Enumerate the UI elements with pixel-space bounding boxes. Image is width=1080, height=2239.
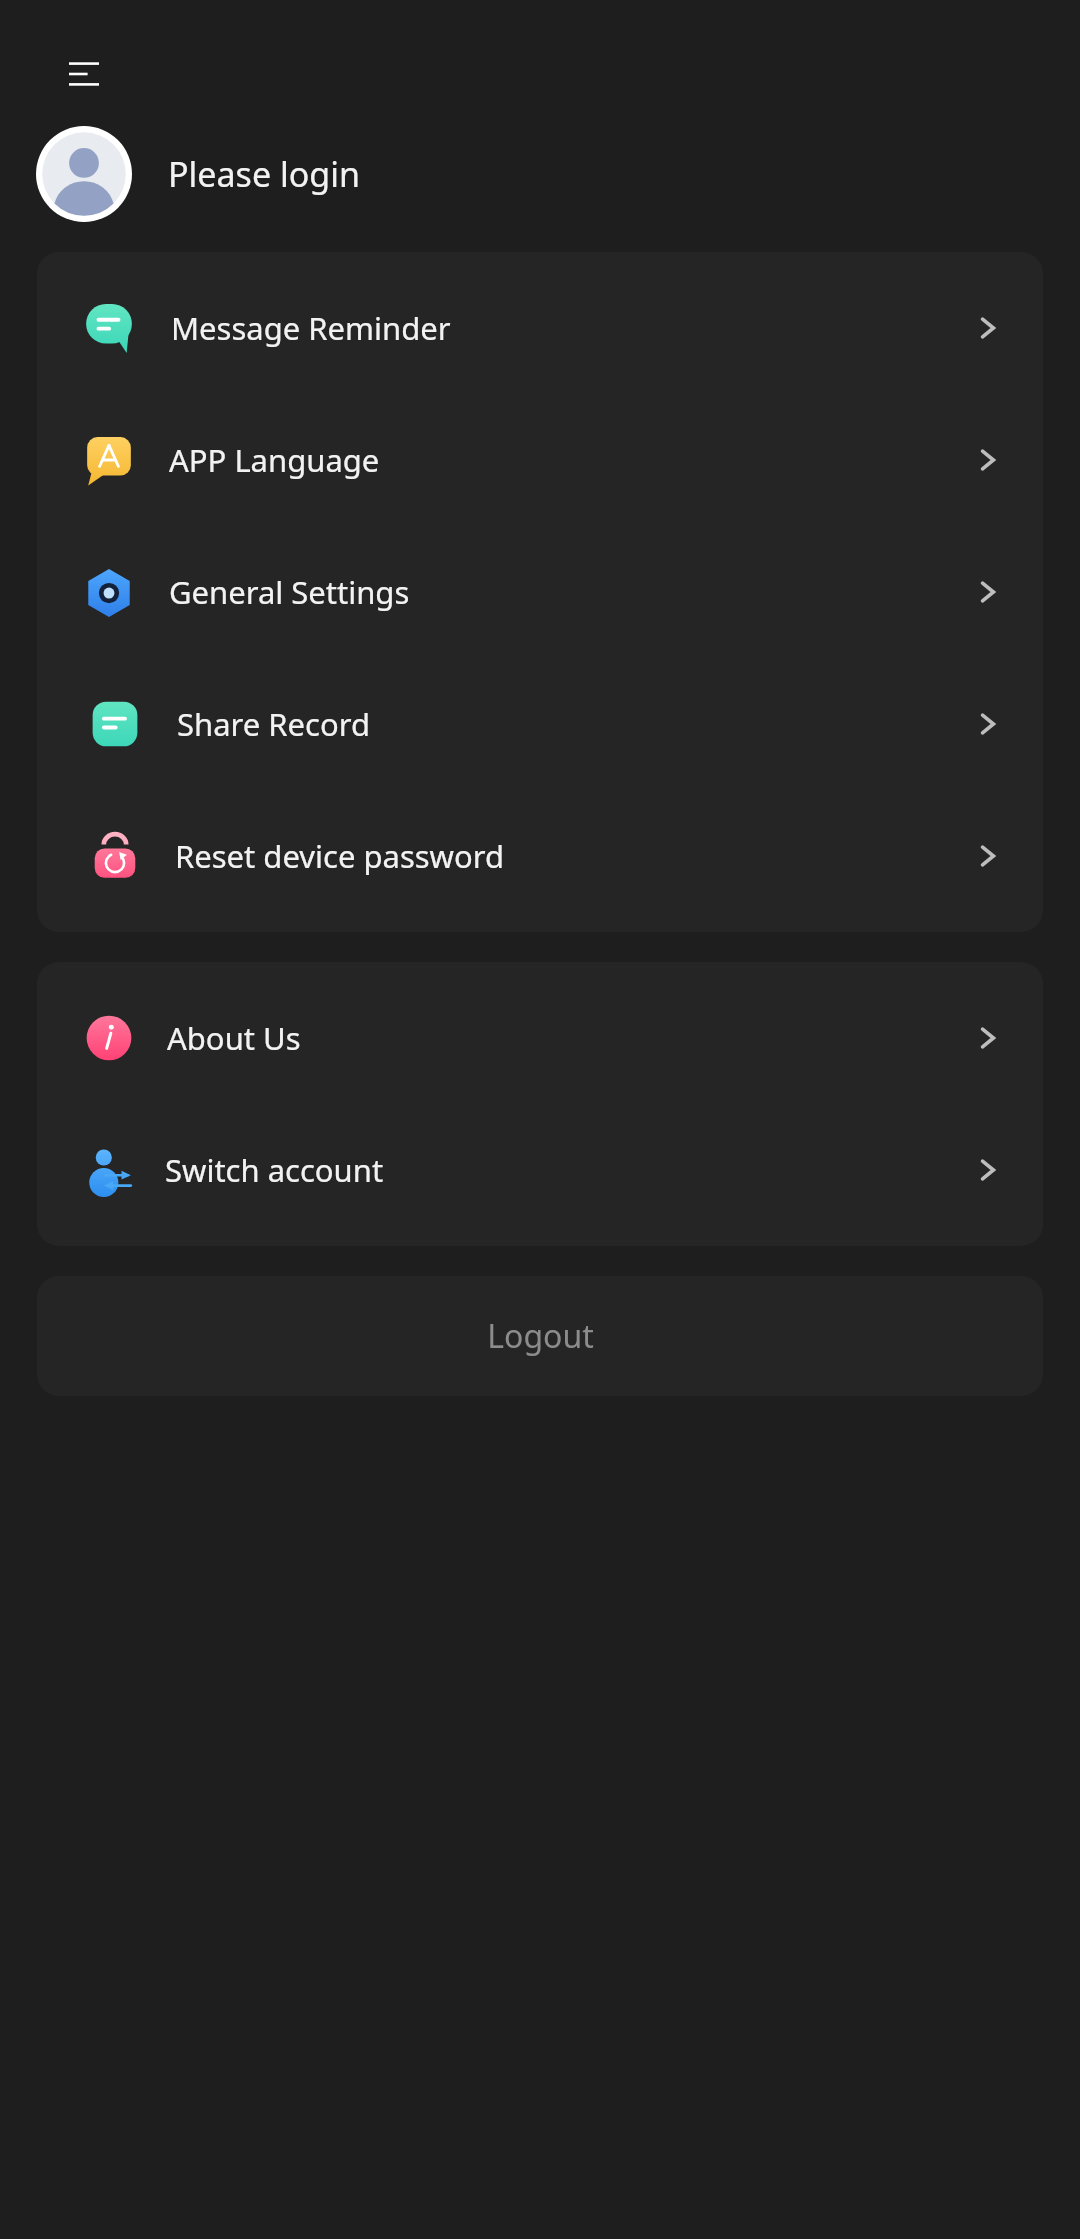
staticText: Reset device password	[175, 835, 971, 877]
staticText: Logout	[487, 1314, 594, 1358]
button[interactable]: Reset device password	[37, 790, 1043, 922]
button[interactable]: About Us	[37, 972, 1043, 1104]
button[interactable]: Message Reminder	[37, 262, 1043, 394]
staticText: Share Record	[177, 703, 971, 745]
button[interactable]: Logout	[37, 1276, 1043, 1396]
button[interactable]: Switch account	[37, 1104, 1043, 1236]
staticText: Message Reminder	[171, 307, 971, 349]
staticText: General Settings	[169, 571, 971, 613]
button[interactable]: Menu	[62, 52, 106, 96]
button[interactable]: Share Record	[37, 658, 1043, 790]
staticText: APP Language	[169, 439, 971, 481]
button[interactable]: Please login	[0, 126, 1080, 222]
button[interactable]: APP Language	[37, 394, 1043, 526]
staticText: Please login	[168, 151, 360, 197]
button[interactable]: General Settings	[37, 526, 1043, 658]
staticText: Switch account	[165, 1149, 971, 1191]
staticText: About Us	[167, 1017, 971, 1059]
